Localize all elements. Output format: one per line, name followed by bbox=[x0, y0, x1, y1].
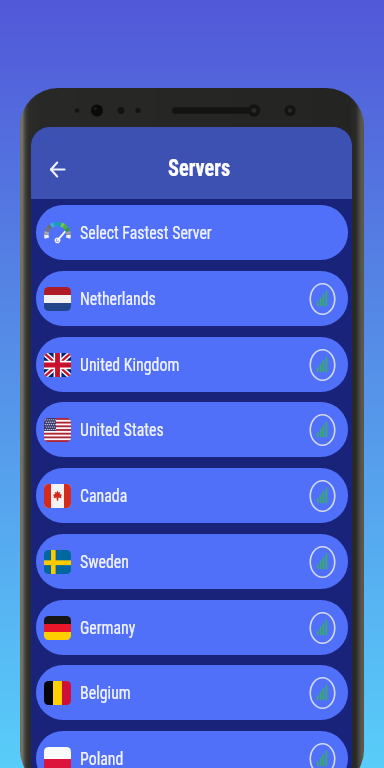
button[interactable]: Belgium bbox=[36, 665, 348, 720]
staticText: United States bbox=[80, 419, 164, 440]
button[interactable]: Netherlands bbox=[36, 271, 348, 326]
staticText: Canada bbox=[80, 485, 127, 506]
button[interactable]: United Kingdom bbox=[36, 337, 348, 392]
staticText: Poland bbox=[80, 748, 124, 768]
staticText: United Kingdom bbox=[80, 354, 179, 375]
button[interactable]: Germany bbox=[36, 600, 348, 655]
staticText: Servers bbox=[168, 155, 230, 182]
button[interactable]: Back bbox=[37, 149, 77, 189]
staticText: Netherlands bbox=[80, 288, 157, 309]
staticText: Germany bbox=[80, 617, 135, 638]
staticText: Belgium bbox=[80, 682, 131, 703]
staticText: Sweden bbox=[80, 551, 129, 572]
button[interactable]: Canada bbox=[36, 468, 348, 523]
staticText: Select Fastest Server bbox=[80, 222, 212, 243]
button[interactable]: Poland bbox=[36, 731, 348, 768]
button[interactable]: Sweden bbox=[36, 534, 348, 589]
button[interactable]: Select Fastest Server bbox=[36, 205, 348, 260]
button[interactable]: United States bbox=[36, 402, 348, 457]
